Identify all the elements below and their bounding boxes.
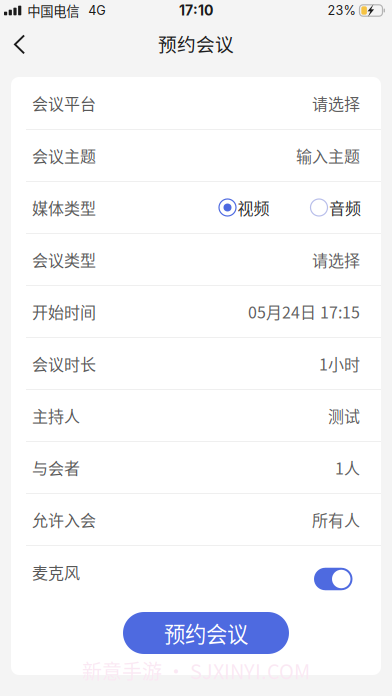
staticText: 会议类型 xyxy=(32,248,96,271)
button[interactable]: 会议时长 xyxy=(11,338,381,389)
button[interactable]: 开始时间 xyxy=(11,286,381,337)
staticText: 允许入会 xyxy=(32,508,96,531)
staticText: 输入主题 xyxy=(296,144,360,167)
staticText: 17:10 xyxy=(179,2,213,19)
staticText: 所有人 xyxy=(312,508,360,531)
staticText: 开始时间 xyxy=(32,300,96,323)
staticText: 请选择 xyxy=(312,91,360,115)
staticText: 1小时 xyxy=(319,352,360,375)
button[interactable]: 视频 xyxy=(219,196,269,219)
button[interactable]: 允许入会 xyxy=(11,494,381,545)
button[interactable]: Back xyxy=(0,21,39,63)
staticText: 会议平台 xyxy=(32,91,96,115)
staticText: 音频 xyxy=(329,196,361,219)
staticText: 新意手游 · SJXINYI.COM xyxy=(82,656,310,685)
button[interactable]: 与会者 xyxy=(11,442,381,493)
staticText: 会议时长 xyxy=(32,352,96,375)
staticText: 4G xyxy=(88,3,105,18)
staticText: 1人 xyxy=(335,456,360,479)
staticText: 05月24日 17:15 xyxy=(248,300,360,323)
staticText: 请选择 xyxy=(312,248,360,271)
staticText: 预约会议 xyxy=(158,30,234,57)
button[interactable]: 主持人 xyxy=(11,390,381,441)
staticText: 测试 xyxy=(328,404,360,427)
button[interactable]: 音频 xyxy=(310,196,361,219)
staticText: 麦克风 xyxy=(32,560,80,584)
staticText: 会议主题 xyxy=(32,144,96,167)
staticText: 与会者 xyxy=(32,456,80,479)
button[interactable]: Microphone on xyxy=(314,554,352,590)
button[interactable]: 会议主题 xyxy=(11,130,381,181)
staticText: 23% xyxy=(327,3,355,18)
staticText: 媒体类型 xyxy=(32,196,96,219)
button[interactable]: 会议类型 xyxy=(11,234,381,285)
staticText: 视频 xyxy=(237,196,269,219)
staticText: 主持人 xyxy=(32,404,80,427)
staticText: 中国电信 xyxy=(27,1,79,20)
staticText: 预约会议 xyxy=(164,618,248,648)
button[interactable]: 预约会议 xyxy=(123,612,289,654)
button[interactable]: 会议平台 xyxy=(11,77,381,129)
